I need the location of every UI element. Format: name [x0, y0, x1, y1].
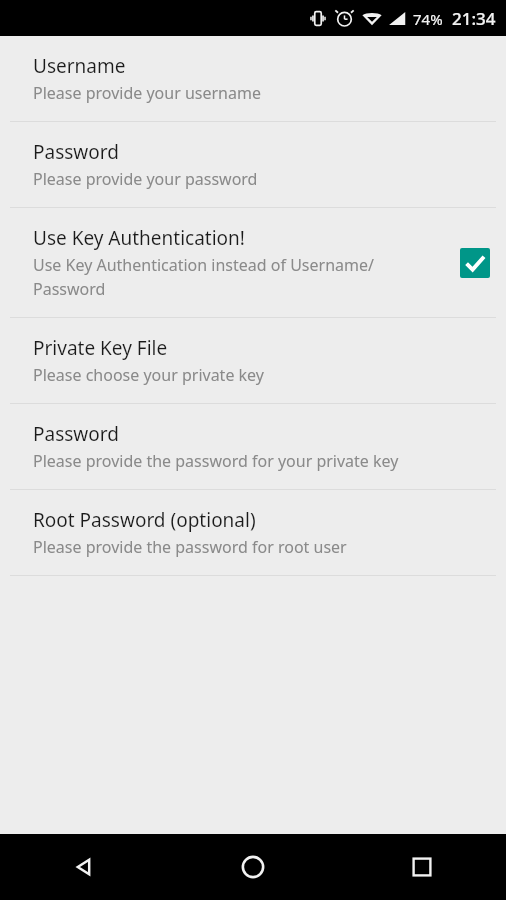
staticText: Please provide the password for root use… — [33, 536, 347, 558]
staticText: Please choose your private key — [33, 364, 264, 386]
button[interactable]: Username — [0, 36, 506, 121]
staticText: Use Key Authentication! — [33, 225, 245, 251]
button[interactable]: Password — [0, 122, 506, 207]
button[interactable]: Root Password (optional) — [0, 490, 506, 575]
button[interactable]: Back — [0, 834, 168, 900]
staticText: Use Key Authentication instead of Userna… — [33, 254, 386, 300]
staticText: Password — [33, 421, 119, 447]
staticText: Please provide your password — [33, 168, 258, 190]
staticText: Username — [33, 53, 126, 79]
staticText: 21:34 — [452, 7, 496, 30]
button[interactable]: Password — [0, 404, 506, 489]
staticText: Please provide the password for your pri… — [33, 450, 399, 472]
button[interactable]: Private Key File — [0, 318, 506, 403]
button[interactable]: Recent apps — [337, 834, 506, 900]
staticText: Please provide your username — [33, 82, 261, 104]
staticText: Root Password (optional) — [33, 507, 256, 533]
button[interactable]: Use Key Authentication! — [0, 208, 506, 317]
button[interactable]: Home — [168, 834, 337, 900]
staticText: Password — [33, 139, 119, 165]
staticText: Private Key File — [33, 335, 168, 361]
staticText: 74% — [413, 9, 443, 29]
button[interactable]: Use Key Authentication toggle — [460, 248, 490, 278]
